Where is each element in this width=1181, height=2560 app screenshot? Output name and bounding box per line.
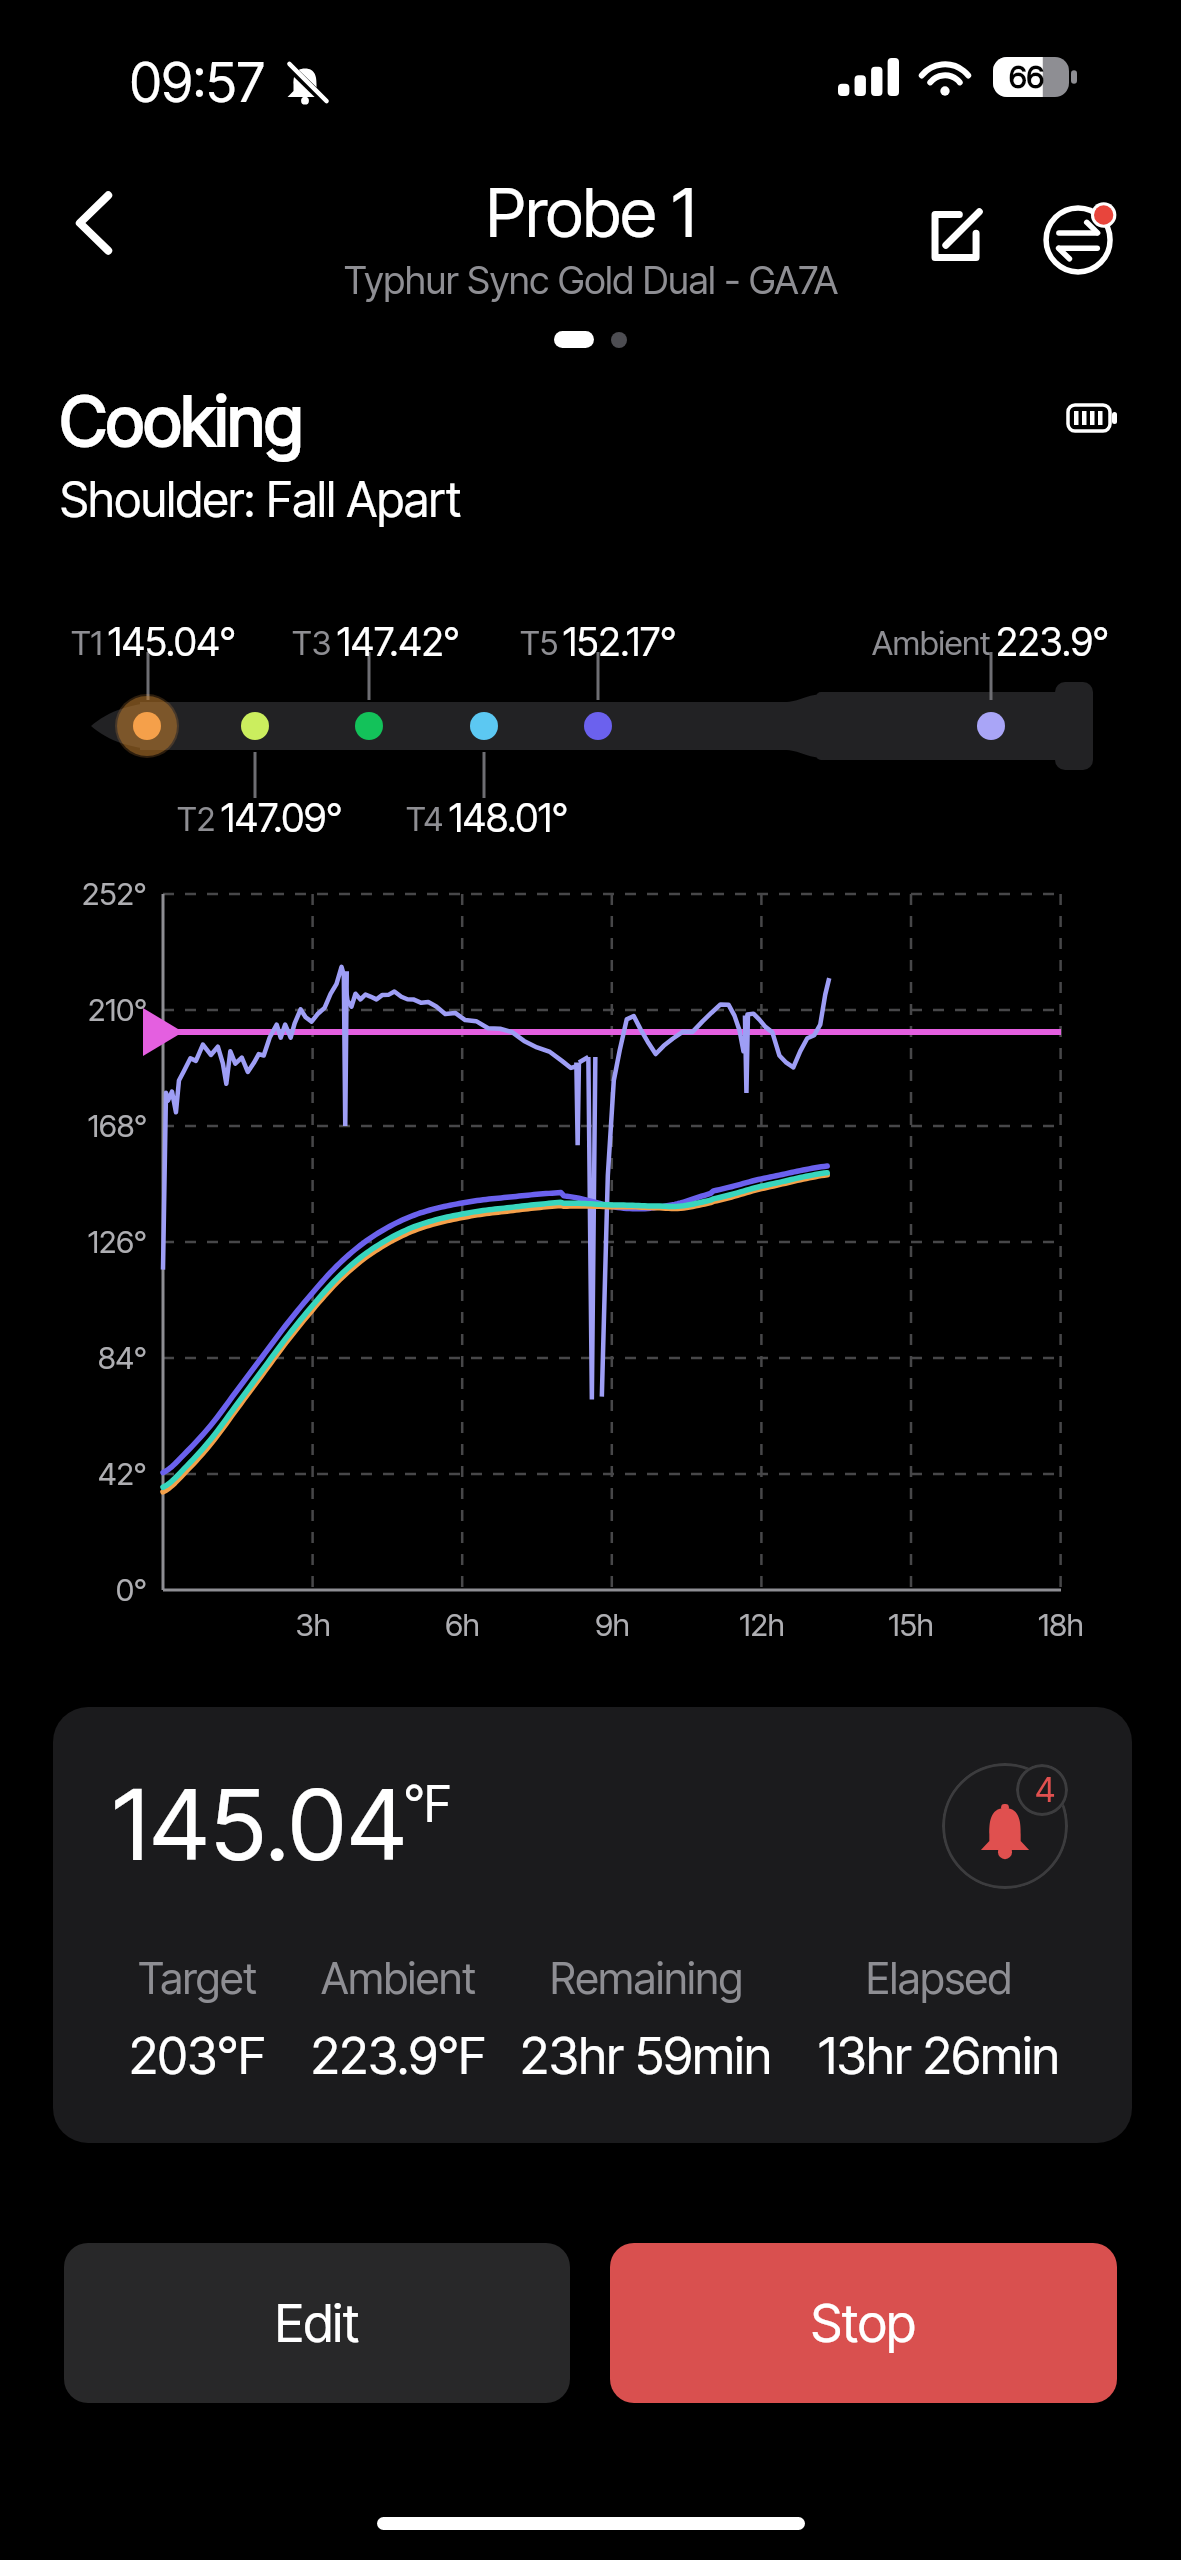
staticText: 252° <box>82 875 147 913</box>
staticText: 4 <box>1035 1769 1056 1810</box>
staticText: 18h <box>1038 1606 1084 1644</box>
button[interactable]: Back <box>50 178 140 268</box>
staticText: 148.01° <box>449 794 568 841</box>
staticText: T4 <box>406 799 444 839</box>
staticText: 12h <box>739 1606 785 1644</box>
button[interactable]: Switch probe <box>1036 188 1130 282</box>
staticText: Target <box>138 1952 257 2004</box>
staticText: T3 <box>292 623 332 663</box>
staticText: 223.9° <box>996 618 1109 665</box>
staticText: Remaining <box>550 1952 743 2004</box>
staticText: 210° <box>88 991 147 1029</box>
button[interactable]: 145.04 <box>53 1707 1132 2143</box>
staticText: 23hr 59min <box>520 2025 772 2087</box>
staticText: Typhur Sync Gold Dual - GA7A <box>344 257 838 303</box>
staticText: T5 <box>520 623 558 663</box>
staticText: 223.9°F <box>311 2025 486 2087</box>
staticText: 147.09° <box>221 794 343 841</box>
staticText: Cooking <box>60 380 303 462</box>
staticText: 152.17° <box>563 618 677 665</box>
staticText: 3h <box>295 1606 331 1644</box>
staticText: 145.04 <box>113 1765 409 1884</box>
staticText: 0° <box>116 1571 147 1609</box>
staticText: 9h <box>595 1606 630 1644</box>
staticText: T2 <box>177 799 216 839</box>
staticText: 66 <box>1009 58 1045 96</box>
staticText: 203°F <box>129 2025 266 2087</box>
staticText: T1 <box>71 623 103 663</box>
staticText: 168° <box>88 1107 147 1145</box>
button[interactable]: Stop <box>610 2243 1117 2403</box>
staticText: Probe 1 <box>486 172 696 253</box>
staticText: 15h <box>888 1606 934 1644</box>
button[interactable]: Edit <box>912 193 998 279</box>
staticText: 84° <box>98 1339 147 1377</box>
staticText: Edit <box>275 2292 360 2355</box>
staticText: Elapsed <box>866 1952 1012 2004</box>
staticText: 147.42° <box>337 618 460 665</box>
staticText: Shoulder: Fall Apart <box>60 470 462 528</box>
staticText: 126° <box>88 1223 147 1261</box>
button[interactable]: Alerts <box>942 1763 1068 1889</box>
staticText: 13hr 26min <box>818 2025 1060 2087</box>
staticText: °F <box>404 1774 452 1834</box>
staticText: 09:57 <box>130 50 266 115</box>
staticText: Ambient <box>872 623 991 663</box>
staticText: Stop <box>811 2292 916 2355</box>
staticText: Ambient <box>321 1952 476 2004</box>
staticText: 6h <box>445 1606 480 1644</box>
button[interactable]: Edit <box>64 2243 570 2403</box>
staticText: 42° <box>98 1455 147 1493</box>
staticText: 145.04° <box>108 618 236 665</box>
